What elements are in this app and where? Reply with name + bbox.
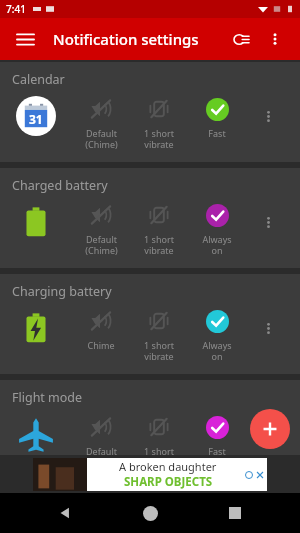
staticText: Always on [202, 233, 232, 256]
staticText: Flight mode [12, 389, 83, 406]
staticText: 1 short vibrate [144, 445, 174, 455]
staticText: Notification settings [53, 29, 199, 49]
button[interactable]: Calendar [0, 62, 300, 162]
staticText: Fast [208, 445, 226, 455]
staticText: A broken daughter [119, 459, 217, 474]
staticText: 7:41 [6, 2, 26, 16]
button[interactable]: Sort [228, 26, 254, 52]
button[interactable]: Always on [188, 306, 246, 362]
staticText: SHARP OBJECTS [124, 474, 213, 490]
button[interactable]: Always on [188, 200, 246, 256]
button[interactable]: Back [45, 493, 85, 533]
button[interactable]: Open navigation menu [12, 26, 38, 52]
button[interactable]: A broken daughter [33, 458, 267, 491]
button[interactable]: Charging battery [0, 274, 300, 374]
button[interactable]: Fast [188, 94, 246, 139]
button[interactable]: Default (Chime) [72, 200, 130, 256]
button[interactable]: Charging battery options [246, 306, 290, 350]
staticText: Default (Chime) [85, 445, 118, 455]
staticText: Charging battery [12, 283, 112, 300]
staticText: Calendar [12, 71, 65, 88]
staticText: 1 short vibrate [144, 339, 174, 362]
button[interactable]: Default (Chime) [72, 412, 130, 455]
button[interactable]: Chime [72, 306, 130, 351]
button[interactable]: Fast [188, 412, 246, 455]
button[interactable]: 1 short vibrate [130, 200, 188, 256]
button[interactable]: 1 short vibrate [130, 306, 188, 362]
button[interactable]: Recent apps [215, 493, 255, 533]
staticText: Charged battery [12, 177, 108, 194]
staticText: Always on [202, 339, 232, 362]
button[interactable]: Add notification [250, 409, 290, 449]
button[interactable]: 1 short vibrate [130, 412, 188, 455]
button[interactable]: Charged battery [0, 168, 300, 268]
staticText: 1 short vibrate [144, 233, 174, 256]
staticText: 31 [29, 111, 43, 127]
button[interactable]: More options [262, 26, 288, 52]
button[interactable]: Flight mode [0, 380, 300, 455]
staticText: Default (Chime) [85, 127, 118, 150]
staticText: Default (Chime) [85, 233, 118, 256]
button[interactable]: Default (Chime) [72, 94, 130, 150]
staticText: Fast [208, 127, 226, 139]
button[interactable]: Home [130, 493, 170, 533]
button[interactable]: 1 short vibrate [130, 94, 188, 150]
button[interactable]: Flight mode options [246, 412, 290, 455]
button[interactable]: Calendar options [246, 94, 290, 138]
staticText: Chime [87, 339, 115, 351]
staticText: 1 short vibrate [144, 127, 174, 150]
button[interactable]: Charged battery options [246, 200, 290, 244]
